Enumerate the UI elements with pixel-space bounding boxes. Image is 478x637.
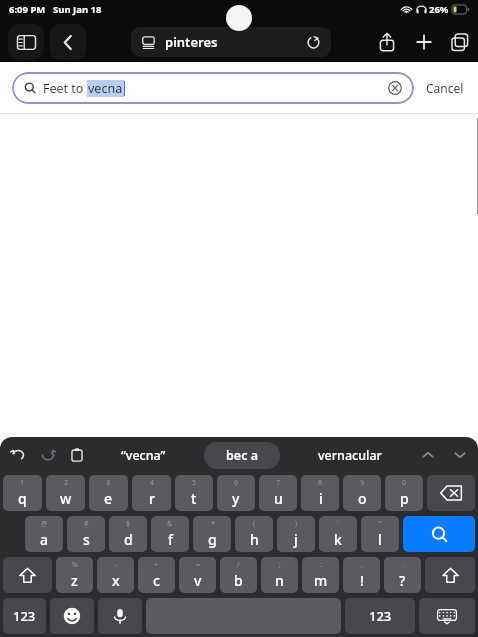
- button[interactable]: Cancel: [424, 74, 466, 102]
- button[interactable]: Previous: [420, 447, 436, 463]
- staticText: =: [196, 560, 201, 570]
- other: Shift: [19, 567, 36, 584]
- button[interactable]: 2: [46, 475, 85, 511]
- button[interactable]: @: [25, 516, 63, 552]
- other: Backspace: [440, 485, 462, 501]
- staticText: m: [314, 571, 328, 590]
- button[interactable]: 8: [301, 475, 339, 511]
- button[interactable]: Share: [376, 31, 398, 53]
- button[interactable]: %: [56, 557, 93, 593]
- staticText: s: [83, 530, 90, 549]
- staticText: bec a: [226, 447, 258, 464]
- staticText: ': [337, 519, 339, 529]
- button[interactable]: 4: [132, 475, 171, 511]
- button[interactable]: 1: [3, 475, 42, 511]
- button[interactable]: #: [67, 516, 105, 552]
- button[interactable]: Tabs: [450, 32, 470, 52]
- other: Dictation: [112, 608, 128, 624]
- button[interactable]: Dictation: [98, 598, 142, 634]
- button[interactable]: 7: [259, 475, 297, 511]
- staticText: 5: [192, 478, 197, 488]
- button[interactable]: New tab: [414, 32, 434, 52]
- button[interactable]: Clear: [388, 81, 402, 95]
- staticText: p: [400, 489, 409, 508]
- other: Search: [431, 526, 448, 543]
- button[interactable]: &: [151, 516, 189, 552]
- button[interactable]: Shift: [3, 557, 52, 593]
- button[interactable]: Search: [403, 516, 475, 552]
- staticText: q: [18, 489, 27, 508]
- other: Shift: [442, 567, 459, 584]
- button[interactable]: :: [302, 557, 339, 593]
- button[interactable]: 5: [175, 475, 213, 511]
- staticText: 8: [318, 478, 323, 488]
- staticText: l: [378, 530, 382, 549]
- staticText: j: [294, 530, 298, 549]
- button[interactable]: 9: [343, 475, 381, 511]
- staticText: .: [402, 560, 404, 570]
- staticText: @: [41, 519, 48, 529]
- button[interactable]: ,: [343, 557, 380, 593]
- staticText: x: [112, 571, 120, 590]
- button[interactable]: Feet to: [12, 72, 414, 104]
- button[interactable]: Sidebar: [8, 24, 44, 60]
- staticText: z: [71, 571, 78, 590]
- staticText: i: [319, 489, 323, 508]
- button[interactable]: .: [384, 557, 421, 593]
- button[interactable]: 123: [3, 598, 46, 634]
- button[interactable]: Emoji: [50, 598, 94, 634]
- button[interactable]: (: [235, 516, 273, 552]
- button[interactable]: vernacular: [312, 443, 388, 468]
- button[interactable]: Backspace: [427, 475, 475, 511]
- staticText: (: [253, 519, 256, 529]
- staticText: v: [194, 571, 202, 590]
- button[interactable]: “vecna”: [115, 443, 172, 468]
- button[interactable]: $: [109, 516, 147, 552]
- staticText: Cancel: [426, 80, 464, 96]
- button[interactable]: 0: [385, 475, 423, 511]
- button[interactable]: 3: [89, 475, 128, 511]
- button[interactable]: ": [361, 516, 399, 552]
- staticText: h: [250, 530, 259, 549]
- staticText: 1: [20, 478, 25, 488]
- staticText: t: [191, 489, 197, 508]
- staticText: ,: [361, 560, 363, 570]
- button[interactable]: +: [138, 557, 175, 593]
- staticText: b: [234, 571, 243, 590]
- staticText: o: [358, 489, 367, 508]
- staticText: vernacular: [318, 447, 382, 464]
- staticText: 123: [13, 607, 36, 625]
- button[interactable]: Shift: [425, 557, 475, 593]
- button[interactable]: ): [277, 516, 315, 552]
- button[interactable]: ;: [261, 557, 298, 593]
- staticText: c: [153, 571, 160, 590]
- staticText: e: [104, 489, 113, 508]
- button[interactable]: Redo: [40, 447, 56, 463]
- staticText: -: [115, 560, 118, 570]
- button[interactable]: pinteres: [131, 27, 331, 57]
- button[interactable]: ': [319, 516, 357, 552]
- button[interactable]: Undo: [10, 447, 26, 463]
- button[interactable]: Paste: [70, 448, 84, 462]
- other: Hide keyboard: [437, 609, 457, 624]
- staticText: 123: [369, 607, 392, 625]
- staticText: 6: [234, 478, 239, 488]
- button[interactable]: 123: [345, 598, 415, 634]
- button[interactable]: Next: [452, 447, 468, 463]
- staticText: 9: [360, 478, 365, 488]
- button[interactable]: *: [193, 516, 231, 552]
- staticText: 2: [64, 478, 69, 488]
- button[interactable]: Back: [50, 24, 86, 60]
- button[interactable]: -: [97, 557, 134, 593]
- button[interactable]: Hide keyboard: [419, 598, 475, 634]
- staticText: a: [40, 530, 49, 549]
- button[interactable]: /: [220, 557, 257, 593]
- button[interactable]: =: [179, 557, 216, 593]
- button[interactable]: 6: [217, 475, 255, 511]
- button[interactable]: bec a: [204, 442, 280, 469]
- other: Emoji: [63, 607, 81, 625]
- staticText: Sun Jan 18: [53, 3, 102, 16]
- staticText: n: [275, 571, 284, 590]
- staticText: /: [237, 560, 240, 570]
